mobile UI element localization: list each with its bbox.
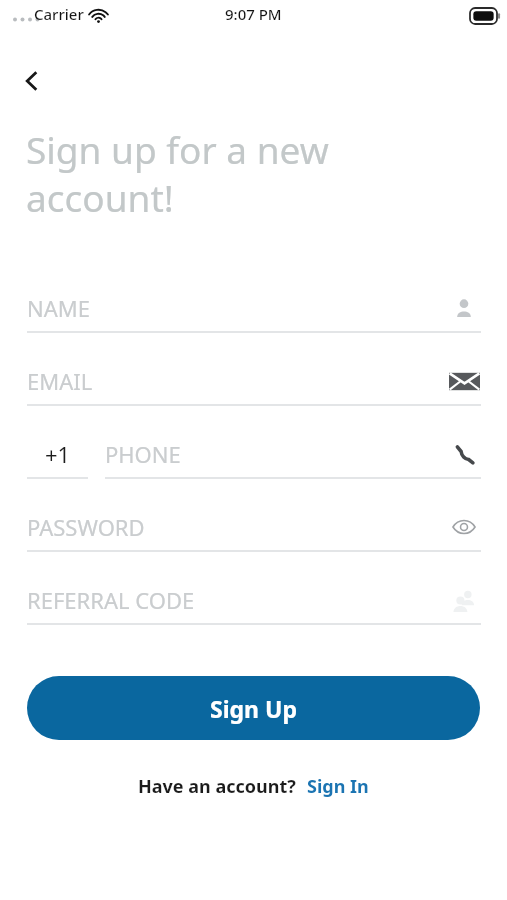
staticText: 9:07 PM: [225, 4, 282, 24]
staticText: REFERRAL CODE: [27, 585, 195, 615]
button[interactable]: EMAIL: [27, 362, 481, 406]
staticText: PASSWORD: [27, 512, 145, 542]
staticText: Sign Up: [210, 693, 297, 724]
button[interactable]: PHONE: [105, 435, 481, 479]
staticText: Carrier: [34, 4, 84, 24]
button[interactable]: +1: [27, 435, 88, 479]
button[interactable]: REFERRAL CODE: [27, 581, 481, 625]
staticText: +1: [45, 439, 71, 469]
staticText: Have an account?: [138, 774, 296, 799]
staticText: Sign In: [307, 774, 369, 799]
staticText: Sign up for a new account!: [26, 124, 329, 223]
staticText: PHONE: [105, 439, 181, 469]
button[interactable]: PASSWORD: [27, 508, 481, 552]
button[interactable]: Sign Up: [27, 676, 480, 740]
staticText: NAME: [27, 293, 90, 323]
button[interactable]: NAME: [27, 289, 481, 333]
button[interactable]: Sign In: [307, 774, 369, 799]
staticText: EMAIL: [27, 366, 93, 396]
button[interactable]: Back: [8, 57, 56, 105]
